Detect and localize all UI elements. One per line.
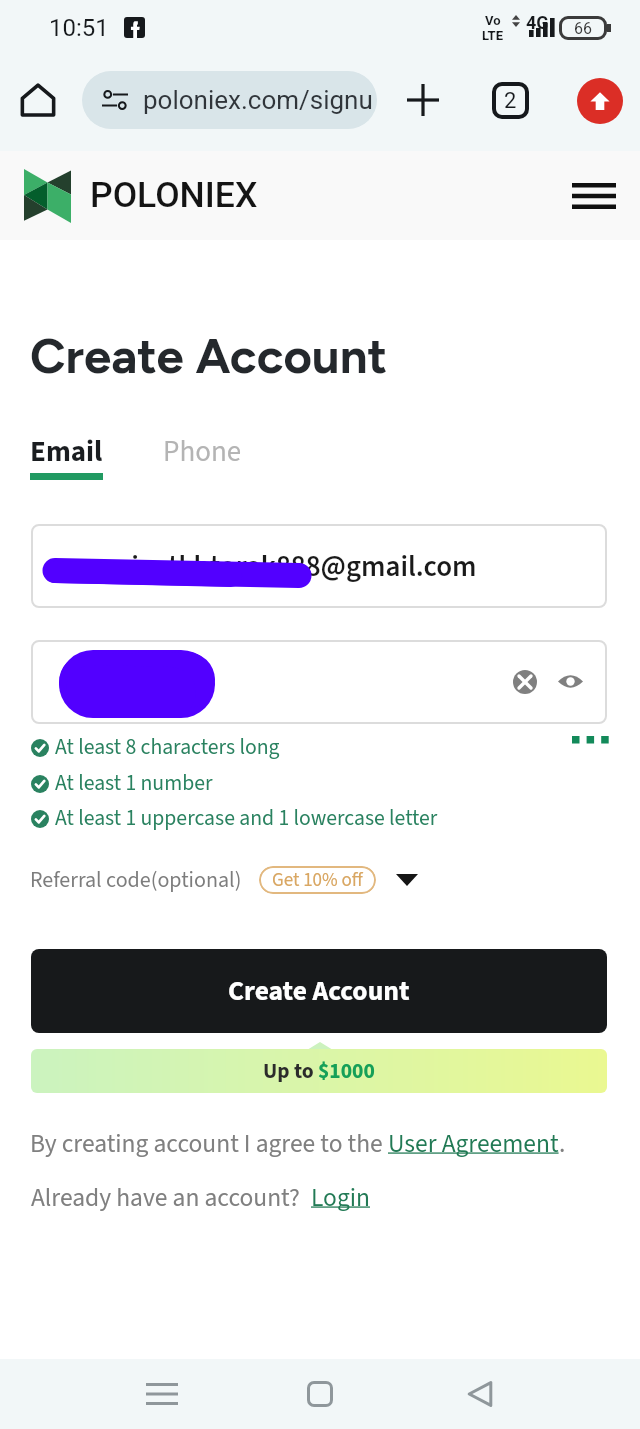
button[interactable]: Update available bbox=[577, 78, 623, 124]
button[interactable]: Create Account bbox=[31, 949, 607, 1033]
staticText: At least 1 uppercase and 1 lowercase let… bbox=[55, 803, 438, 834]
button[interactable]: Phone bbox=[163, 431, 242, 472]
staticText: Email bbox=[30, 431, 103, 472]
button[interactable]: New tab bbox=[394, 71, 452, 129]
staticText: Referral code(optional) bbox=[30, 864, 242, 895]
staticText: $1000 bbox=[318, 1056, 375, 1087]
button[interactable]: poloniex.com/signu bbox=[82, 71, 377, 129]
button[interactable]: Login bbox=[311, 1180, 370, 1216]
staticText: POLONIEX bbox=[90, 174, 258, 216]
staticText: 66 bbox=[574, 19, 592, 38]
button[interactable]: Home bbox=[288, 1362, 352, 1426]
button[interactable]: Home bbox=[8, 70, 68, 130]
staticText: By creating account I agree to the bbox=[30, 1126, 388, 1162]
staticText: Create Account bbox=[30, 326, 388, 385]
button[interactable]: sumanjeetkhtorak888@gmail.com bbox=[31, 524, 607, 608]
staticText: 2 bbox=[504, 88, 517, 114]
button[interactable]: Get 10% off bbox=[259, 866, 376, 894]
button[interactable]: Back bbox=[448, 1362, 512, 1426]
staticText: Vo bbox=[485, 13, 501, 28]
staticText: . bbox=[559, 1126, 566, 1162]
staticText: Get 10% off bbox=[272, 867, 363, 894]
button[interactable]: Tabs bbox=[481, 71, 539, 129]
staticText: sumanjeetkhtorak888@gmail.com bbox=[47, 546, 477, 587]
staticText: At least 8 characters long bbox=[55, 732, 280, 763]
button[interactable]: Show password bbox=[554, 665, 586, 697]
button[interactable]: Expand referral code bbox=[393, 866, 421, 894]
button[interactable]: Up to bbox=[31, 1049, 607, 1093]
button[interactable]: Menu bbox=[562, 170, 626, 222]
button[interactable]: Clear password bbox=[31, 640, 607, 724]
staticText: At least 1 number bbox=[55, 768, 213, 799]
staticText: Up to bbox=[263, 1056, 318, 1087]
staticText: 10:51 bbox=[49, 14, 109, 42]
staticText: poloniex.com/signu bbox=[143, 85, 373, 115]
staticText: Already have an account? bbox=[31, 1180, 311, 1216]
staticText: 4G bbox=[526, 12, 549, 33]
button[interactable]: Email bbox=[30, 431, 103, 480]
staticText: LTE bbox=[482, 28, 503, 43]
staticText: Create Account bbox=[228, 972, 410, 1011]
button[interactable]: User Agreement bbox=[388, 1126, 559, 1162]
button[interactable]: Clear password bbox=[509, 666, 541, 698]
button[interactable]: Recents bbox=[130, 1362, 194, 1426]
